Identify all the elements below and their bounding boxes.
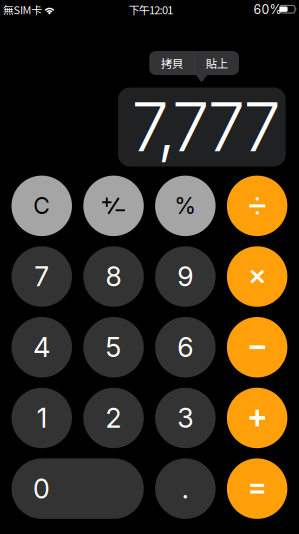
- staticText: 下午12:01: [128, 1, 173, 17]
- staticText: 8: [105, 260, 121, 293]
- staticText: 2: [105, 402, 121, 434]
- button[interactable]: Percent: [155, 176, 216, 236]
- button[interactable]: 3: [155, 388, 216, 448]
- button[interactable]: 6: [155, 317, 216, 377]
- button[interactable]: 0: [11, 458, 144, 519]
- button[interactable]: 2: [83, 388, 144, 448]
- button[interactable]: Equals: [227, 458, 287, 519]
- staticText: 9: [177, 260, 193, 293]
- button[interactable]: 1: [11, 388, 72, 448]
- staticText: 60%: [253, 2, 281, 17]
- staticText: 貼上: [206, 55, 228, 71]
- staticText: 1: [37, 402, 47, 434]
- button[interactable]: Divide: [227, 176, 287, 236]
- button[interactable]: Plus Minus: [83, 176, 144, 236]
- staticText: 5: [105, 331, 121, 363]
- button[interactable]: 7: [11, 246, 72, 307]
- button[interactable]: 5: [83, 317, 144, 377]
- button[interactable]: 拷貝: [149, 51, 194, 75]
- button[interactable]: Plus: [227, 388, 287, 448]
- staticText: 拷貝: [161, 55, 183, 71]
- button[interactable]: Multiply: [227, 246, 287, 307]
- button[interactable]: 貼上: [194, 51, 239, 75]
- button[interactable]: 8: [83, 246, 144, 307]
- staticText: %: [174, 192, 196, 219]
- staticText: 7: [34, 260, 49, 293]
- staticText: C: [33, 192, 50, 219]
- button[interactable]: 4: [11, 317, 72, 377]
- staticText: 4: [33, 331, 50, 363]
- button[interactable]: 9: [155, 246, 216, 307]
- staticText: 無SIM卡: [3, 1, 42, 17]
- staticText: .: [182, 472, 189, 505]
- button[interactable]: Clear: [11, 176, 72, 236]
- staticText: 3: [177, 402, 193, 434]
- staticText: 7,777: [131, 87, 281, 167]
- staticText: 6: [177, 331, 193, 363]
- staticText: 0: [33, 472, 50, 505]
- button[interactable]: Decimal point: [155, 458, 216, 519]
- button[interactable]: Minus: [227, 317, 287, 377]
